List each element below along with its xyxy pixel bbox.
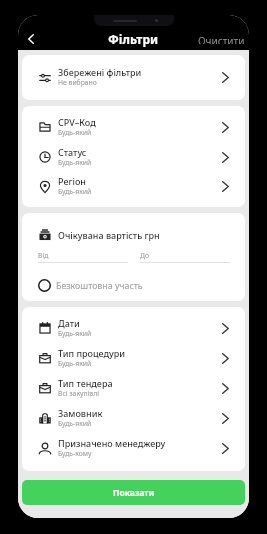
- staticText: Будь-кому: [58, 449, 92, 458]
- staticText: Будь-який: [58, 158, 92, 167]
- button[interactable]: Безкоштовна участь: [22, 270, 245, 301]
- staticText: Будь-який: [58, 187, 92, 196]
- staticText: Очистити: [198, 34, 245, 44]
- button[interactable]: Призначено менеджеру: [22, 433, 245, 463]
- staticText: Показати: [113, 487, 155, 499]
- staticText: Будь-який: [58, 128, 92, 137]
- button[interactable]: CPV–Код: [22, 112, 245, 142]
- staticText: Всі закупівлі: [58, 389, 99, 398]
- staticText: Регіон: [58, 175, 86, 187]
- staticText: Призначено менеджеру: [58, 437, 166, 449]
- staticText: Безкоштовна участь: [56, 280, 143, 292]
- button[interactable]: Показати: [22, 480, 245, 505]
- button[interactable]: Тип тендера: [22, 373, 245, 403]
- staticText: До: [140, 251, 149, 260]
- button[interactable]: Очистити: [192, 28, 249, 50]
- staticText: Від: [38, 251, 49, 260]
- button[interactable]: Збережені фільтри: [22, 55, 245, 100]
- staticText: Будь-який: [58, 359, 92, 368]
- button[interactable]: Тип процедури: [22, 343, 245, 373]
- staticText: Дати: [58, 317, 80, 329]
- staticText: Тип тендера: [58, 377, 113, 389]
- staticText: Збережені фільтри: [58, 66, 142, 78]
- staticText: Не вибрано: [58, 78, 97, 87]
- staticText: Будь-який: [58, 329, 92, 338]
- staticText: Тип процедури: [58, 347, 126, 359]
- button[interactable]: Back: [21, 29, 41, 49]
- staticText: CPV–Код: [58, 116, 96, 128]
- button[interactable]: Дати: [22, 313, 245, 343]
- button[interactable]: Регіон: [22, 172, 245, 201]
- staticText: Статус: [58, 146, 87, 158]
- button[interactable]: Замовник: [22, 403, 245, 433]
- staticText: Фільтри: [108, 31, 159, 47]
- staticText: Будь-який: [58, 419, 92, 428]
- staticText: Замовник: [58, 407, 103, 419]
- button[interactable]: Статус: [22, 142, 245, 172]
- staticText: Очікувана вартість грн: [58, 229, 160, 241]
